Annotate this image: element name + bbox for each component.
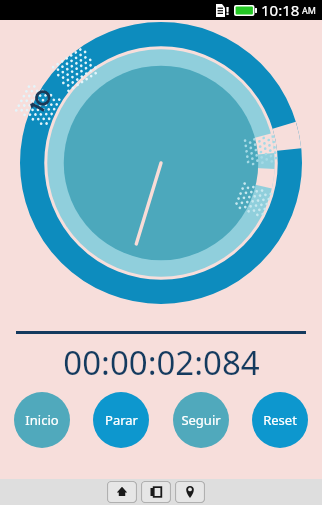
staticText: Inicio <box>25 411 59 429</box>
button[interactable]: Recent apps <box>141 481 171 503</box>
staticText: Seguir <box>181 411 221 429</box>
button[interactable]: Reset <box>252 392 308 448</box>
staticText: 00:00:02:084 <box>63 340 260 385</box>
staticText: 10:18 <box>261 0 300 20</box>
button[interactable]: Parar <box>93 392 149 448</box>
button[interactable]: Search <box>175 481 205 503</box>
button[interactable]: Home <box>107 481 137 503</box>
staticText: AM <box>302 4 316 16</box>
button[interactable]: Inicio <box>14 392 70 448</box>
button[interactable]: Seguir <box>173 392 229 448</box>
staticText: ! <box>226 3 230 18</box>
staticText: Parar <box>105 411 138 429</box>
staticText: Reset <box>263 411 297 429</box>
